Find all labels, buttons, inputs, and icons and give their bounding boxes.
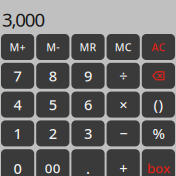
button[interactable]: 8: [36, 63, 69, 89]
button[interactable]: 1: [1, 120, 34, 146]
staticText: ÷: [119, 66, 127, 86]
button[interactable]: 2: [36, 120, 69, 146]
staticText: −: [119, 124, 127, 143]
button[interactable]: M+: [1, 34, 34, 60]
staticText: M-: [46, 40, 59, 54]
staticText: 0: [14, 158, 22, 176]
staticText: 00: [45, 159, 61, 176]
staticText: %: [152, 124, 164, 143]
staticText: 5: [49, 95, 57, 114]
button[interactable]: 7: [1, 63, 34, 89]
button[interactable]: ÷: [107, 63, 140, 89]
button[interactable]: MC: [107, 34, 140, 60]
button[interactable]: MR: [71, 34, 105, 60]
button[interactable]: 5: [36, 92, 69, 118]
staticText: 7: [14, 66, 22, 86]
button[interactable]: 3: [71, 120, 105, 146]
staticText: 6: [84, 95, 92, 114]
staticText: ×: [119, 95, 127, 114]
staticText: MR: [79, 40, 96, 54]
staticText: 9: [84, 66, 92, 86]
staticText: M+: [10, 40, 26, 54]
staticText: 3: [84, 124, 92, 143]
button[interactable]: Delete: [142, 63, 175, 89]
button[interactable]: AC: [142, 34, 175, 60]
staticText: 8: [49, 66, 57, 86]
staticText: +: [119, 158, 127, 176]
button[interactable]: −: [107, 120, 140, 146]
button[interactable]: 00: [36, 149, 69, 176]
button[interactable]: 9: [71, 63, 105, 89]
button[interactable]: (): [142, 92, 175, 118]
staticText: .: [86, 158, 90, 176]
button[interactable]: 0: [1, 149, 34, 176]
button[interactable]: ×: [107, 92, 140, 118]
button[interactable]: %: [142, 120, 175, 146]
button[interactable]: .: [71, 149, 105, 176]
staticText: 3,000: [2, 7, 45, 32]
button[interactable]: 4: [1, 92, 34, 118]
staticText: (): [153, 95, 163, 114]
staticText: box: [147, 159, 170, 176]
staticText: 4: [14, 95, 22, 114]
staticText: AC: [151, 40, 165, 54]
button[interactable]: box: [142, 149, 175, 176]
button[interactable]: +: [107, 149, 140, 176]
button[interactable]: 6: [71, 92, 105, 118]
button[interactable]: M-: [36, 34, 69, 60]
staticText: 2: [49, 124, 57, 143]
staticText: MC: [115, 40, 132, 54]
staticText: 1: [14, 124, 22, 143]
